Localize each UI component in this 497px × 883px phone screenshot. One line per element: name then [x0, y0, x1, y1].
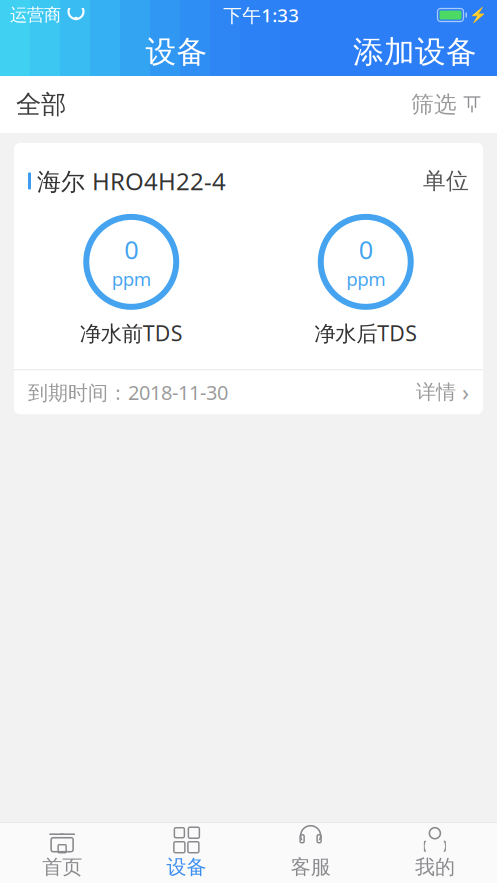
staticText: 设备	[145, 33, 207, 71]
staticText: 净水前TDS	[80, 319, 183, 347]
staticText: 单位	[423, 167, 469, 195]
button[interactable]: 设备	[145, 33, 207, 71]
staticText: 添加设备	[353, 33, 477, 71]
button[interactable]: 客服	[248, 822, 373, 883]
staticText: ›	[456, 377, 469, 407]
staticText: 全部	[16, 89, 66, 120]
staticText: 运营商	[10, 4, 61, 26]
button[interactable]: 首页	[0, 822, 124, 883]
staticText: 我的	[415, 855, 455, 879]
staticText: 筛选	[411, 91, 457, 118]
button[interactable]: 添加设备	[353, 33, 497, 71]
button[interactable]: 我的	[373, 822, 497, 883]
staticText: ppm	[112, 266, 151, 291]
button[interactable]: 到期时间：2018-11-30	[14, 370, 483, 414]
staticText: 净水后TDS	[314, 319, 417, 347]
staticText: 详情	[416, 380, 456, 404]
staticText: ⚡	[469, 7, 487, 23]
staticText: 0	[359, 233, 373, 266]
staticText: 下午1:33	[223, 3, 299, 27]
staticText: 客服	[291, 855, 331, 879]
button[interactable]: 全部	[0, 76, 497, 133]
staticText: 到期时间：2018-11-30	[28, 379, 228, 405]
staticText: 首页	[42, 855, 82, 879]
staticText: ppm	[346, 266, 385, 291]
staticText: 海尔 HRO4H22-4	[37, 165, 226, 197]
button[interactable]: 设备	[124, 822, 248, 883]
staticText: 0	[124, 233, 138, 266]
staticText: 设备	[166, 855, 206, 879]
